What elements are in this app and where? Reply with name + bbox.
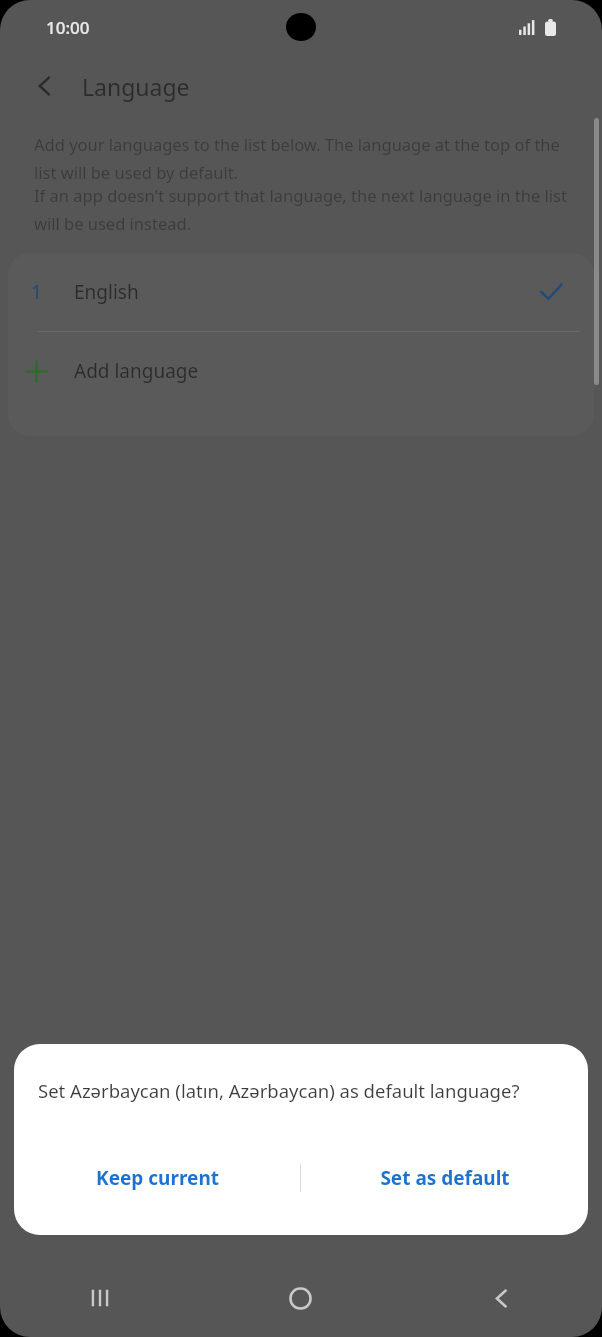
staticText: 10:00: [46, 16, 90, 39]
button[interactable]: Back: [22, 63, 68, 109]
staticText: Set Azərbaycan (latın, Azərbaycan) as de…: [38, 1078, 520, 1103]
staticText: English: [74, 279, 139, 305]
staticText: Keep current: [96, 1165, 219, 1191]
staticText: Language: [82, 71, 190, 102]
button[interactable]: Set as default: [301, 1147, 588, 1209]
staticText: 1: [31, 279, 42, 305]
staticText: Set as default: [380, 1165, 510, 1191]
button[interactable]: 1: [8, 253, 594, 331]
button[interactable]: Back: [401, 1259, 602, 1337]
staticText: Add your languages to the list below. Th…: [34, 133, 576, 184]
button[interactable]: Keep current: [14, 1147, 300, 1209]
button[interactable]: Home: [200, 1259, 401, 1337]
staticText: If an app doesn't support that language,…: [34, 184, 576, 235]
button[interactable]: Recents: [0, 1259, 200, 1337]
button[interactable]: Add language: [8, 332, 594, 410]
staticText: Add language: [74, 358, 199, 384]
